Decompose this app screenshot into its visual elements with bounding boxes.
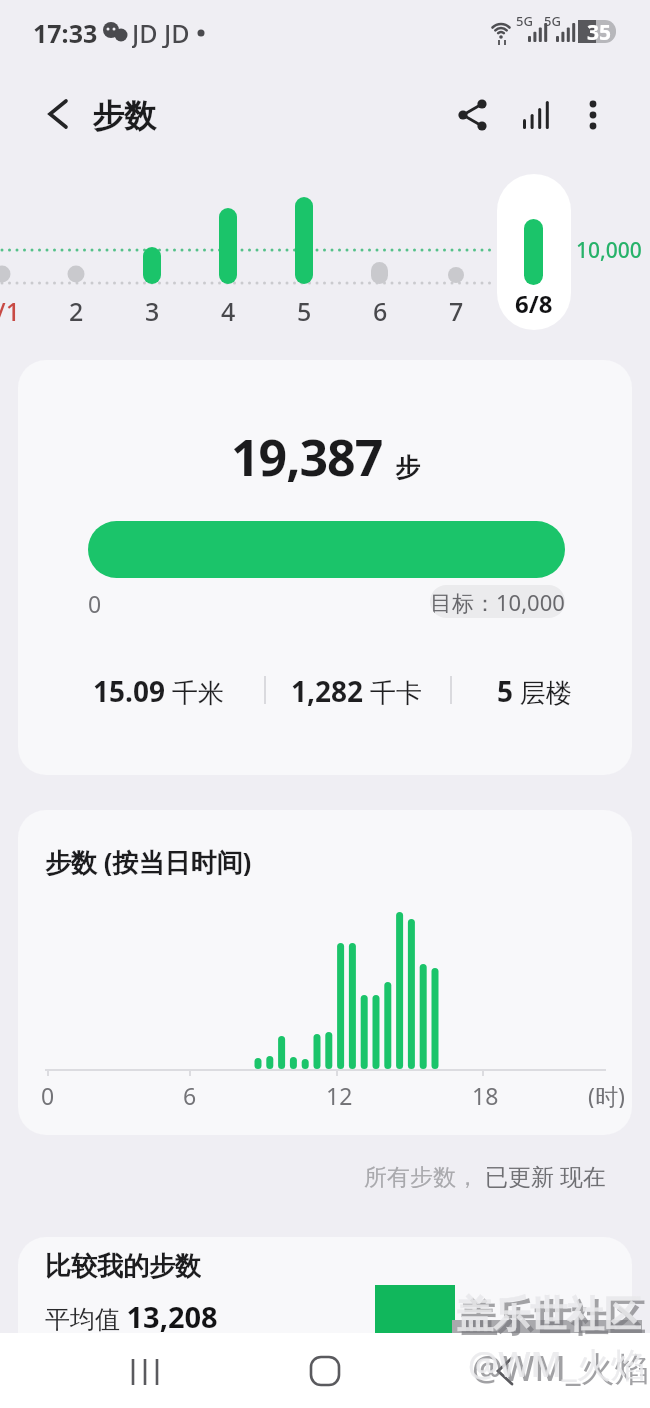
staticText: 6: [373, 294, 388, 324]
staticText: JD JD: [132, 16, 190, 48]
staticText: 5G: [544, 12, 561, 30]
button[interactable]: [510, 90, 560, 140]
staticText: @WM_火焰: [468, 1341, 645, 1387]
staticText: 12: [326, 1080, 353, 1108]
button[interactable]: 1,282 千卡: [263, 672, 449, 708]
staticText: 15.09 千米: [93, 672, 224, 708]
staticText: 0: [41, 1080, 55, 1108]
staticText: 盖乐世社区: [460, 1295, 645, 1341]
button[interactable]: 15.09 千米: [54, 672, 262, 708]
staticText: 4: [221, 294, 236, 324]
staticText: 19,387: [231, 423, 383, 491]
staticText: 6/8: [515, 287, 553, 320]
staticText: @WM_火焰: [472, 1345, 649, 1391]
staticText: 0: [88, 588, 102, 614]
staticText: 步数 (按当日时间): [45, 844, 252, 876]
staticText: 2: [69, 294, 84, 324]
staticText: 盖乐世社区: [456, 1291, 641, 1337]
button[interactable]: [448, 90, 498, 140]
staticText: 17:33: [33, 16, 98, 48]
button[interactable]: [110, 1343, 180, 1399]
staticText: 10,000: [576, 236, 642, 265]
staticText: 7: [449, 294, 464, 324]
staticText: 18: [472, 1080, 499, 1108]
button[interactable]: 步数 (按当日时间): [18, 810, 632, 1135]
button[interactable]: [568, 90, 616, 140]
button[interactable]: [290, 1343, 360, 1399]
staticText: 比较我的步数: [45, 1250, 201, 1282]
staticText: 所有步数， 已更新 现在: [364, 1160, 606, 1188]
staticText: 6: [183, 1080, 197, 1108]
staticText: 平均值 13,208: [45, 1297, 218, 1333]
button[interactable]: 6/8: [497, 174, 571, 330]
staticText: 3: [145, 294, 160, 324]
button[interactable]: [30, 88, 82, 140]
staticText: 5G: [516, 12, 533, 30]
staticText: 5 层楼: [497, 672, 572, 708]
button[interactable]: 19,387: [18, 360, 632, 775]
staticText: 步: [395, 452, 420, 483]
staticText: 步数: [92, 96, 156, 136]
staticText: 1,282 千卡: [291, 672, 422, 708]
staticText: 5: [297, 294, 312, 324]
staticText: 35: [587, 18, 612, 44]
staticText: (时): [588, 1080, 625, 1108]
button[interactable]: 5 层楼: [458, 672, 610, 708]
staticText: /1: [0, 294, 20, 324]
button[interactable]: [470, 1343, 540, 1399]
button[interactable]: 比较我的步数: [18, 1237, 632, 1333]
staticText: 目标：10,000: [430, 587, 565, 617]
